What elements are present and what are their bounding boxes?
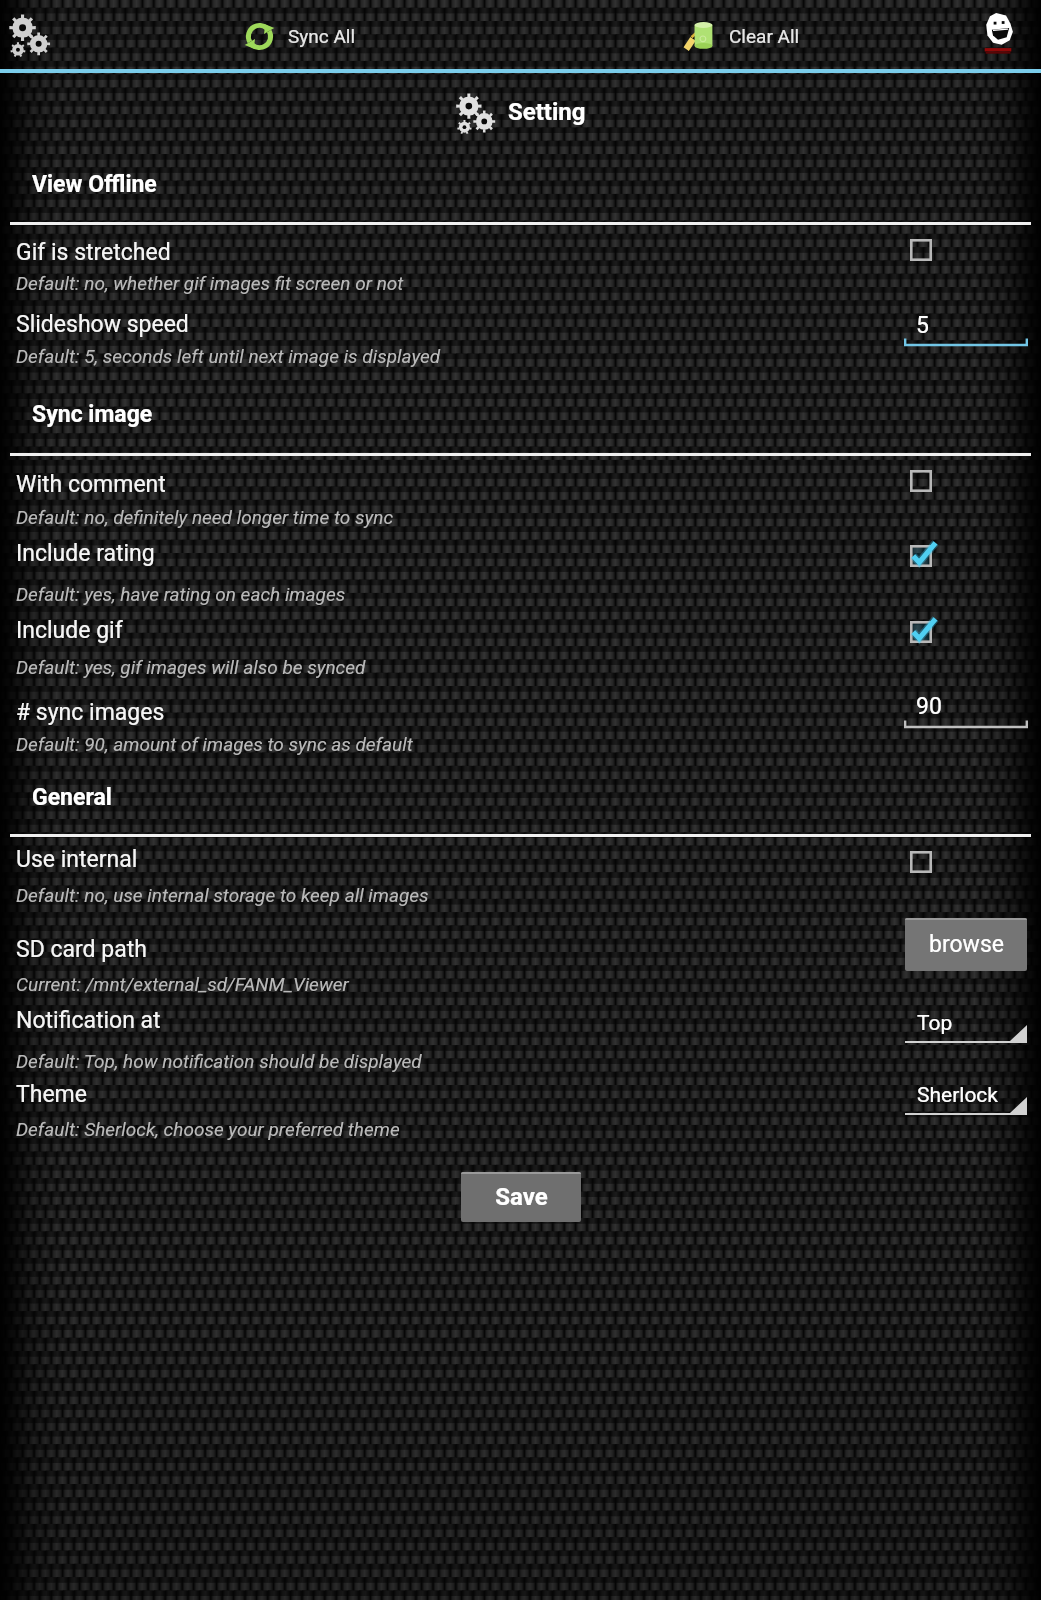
button[interactable]: Settings — [0, 2, 66, 68]
button[interactable]: Sync image — [32, 401, 153, 428]
staticText: Gif is stretched — [16, 239, 171, 266]
button[interactable]: Choose Top — [917, 1011, 953, 1036]
staticText: Setting — [508, 98, 586, 126]
button[interactable]: Unchecked option — [895, 224, 947, 276]
staticText: browse — [929, 931, 1004, 958]
button[interactable]: Slideshow speed — [16, 311, 876, 338]
button[interactable]: Save — [461, 1172, 581, 1222]
staticText: Top — [917, 1011, 953, 1036]
button[interactable]: 90 — [916, 693, 942, 720]
button[interactable]: Include rating — [16, 540, 876, 567]
staticText: Default: no, definitely need longer time… — [16, 506, 394, 528]
staticText: Save — [495, 1183, 548, 1211]
button[interactable]: App logo — [966, 4, 1030, 68]
button[interactable]: Choose Sherlock — [917, 1083, 999, 1108]
staticText: Sync All — [288, 25, 356, 47]
button[interactable]: 5 — [916, 312, 929, 339]
button[interactable]: Include gif — [16, 617, 876, 644]
button[interactable]: Clear All — [677, 8, 801, 64]
staticText: Sync image — [32, 401, 153, 428]
button[interactable]: # sync images — [16, 699, 876, 726]
button[interactable]: Checked option — [895, 530, 947, 582]
staticText: Clear All — [729, 25, 800, 47]
staticText: Sherlock — [917, 1083, 999, 1108]
staticText: Default: Sherlock, choose your preferred… — [16, 1118, 400, 1140]
staticText: Include rating — [16, 540, 155, 567]
button[interactable]: Gif is stretched — [16, 239, 876, 266]
staticText: Default: 5, seconds left until next imag… — [16, 345, 441, 367]
staticText: 90 — [916, 693, 942, 720]
button[interactable]: Theme — [16, 1081, 876, 1108]
button[interactable]: browse — [905, 918, 1027, 971]
button[interactable]: Checked option — [895, 606, 947, 658]
staticText: With comment — [16, 471, 166, 498]
staticText: Default: no, whether gif images fit scre… — [16, 272, 404, 294]
staticText: Theme — [16, 1081, 87, 1108]
staticText: Include gif — [16, 617, 123, 644]
staticText: Default: yes, gif images will also be sy… — [16, 656, 366, 678]
staticText: Use internal — [16, 846, 138, 873]
button[interactable]: SD card path — [16, 936, 876, 963]
staticText: # sync images — [16, 699, 165, 726]
staticText: Default: no, use internal storage to kee… — [16, 884, 429, 906]
button[interactable]: Unchecked option — [895, 836, 947, 888]
staticText: General — [32, 784, 112, 811]
staticText: Notification at — [16, 1007, 161, 1034]
button[interactable]: Notification at — [16, 1007, 876, 1034]
staticText: View Offline — [32, 171, 157, 198]
button[interactable]: General — [32, 784, 112, 811]
staticText: Default: yes, have rating on each images — [16, 583, 346, 605]
staticText: Current: /mnt/external_sd/FANM_Viewer — [16, 973, 349, 995]
staticText: Default: Top, how notification should be… — [16, 1050, 422, 1072]
button[interactable]: Sync All — [236, 8, 360, 64]
staticText: Default: 90, amount of images to sync as… — [16, 733, 413, 755]
staticText: Slideshow speed — [16, 311, 189, 338]
button[interactable]: With comment — [16, 471, 876, 498]
button[interactable]: View Offline — [32, 171, 157, 198]
staticText: 5 — [916, 312, 929, 339]
button[interactable]: Unchecked option — [895, 455, 947, 507]
staticText: SD card path — [16, 936, 147, 963]
button[interactable]: Use internal — [16, 846, 876, 873]
